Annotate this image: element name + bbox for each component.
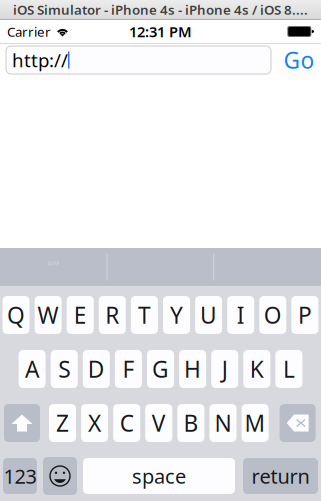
button[interactable]: F — [115, 350, 142, 388]
staticText: B — [183, 408, 198, 438]
button[interactable]: 123 — [3, 458, 37, 494]
button[interactable]: Delete — [280, 404, 316, 442]
button[interactable]: Z — [49, 404, 76, 442]
button[interactable]: A — [19, 350, 46, 388]
staticText: iOS Simulator - iPhone 4s - iPhone 4s / … — [13, 1, 308, 18]
button[interactable]: Emoji keyboard — [43, 457, 77, 495]
button[interactable]: X — [81, 404, 108, 442]
button[interactable]: B — [177, 404, 204, 442]
staticText: A — [25, 354, 39, 384]
staticText: V — [152, 408, 166, 438]
button[interactable]: O — [259, 296, 286, 334]
staticText: return — [251, 463, 309, 489]
staticText: X — [88, 408, 101, 438]
staticText: Z — [56, 408, 69, 438]
button[interactable]: T — [131, 296, 158, 334]
button[interactable]: K — [243, 350, 270, 388]
staticText: P — [298, 300, 312, 330]
staticText: O — [264, 300, 282, 330]
button[interactable]: M — [242, 404, 269, 442]
button[interactable]: L — [275, 350, 302, 388]
staticText: S — [58, 354, 70, 384]
staticText: Y — [170, 300, 183, 330]
staticText: 123 — [3, 463, 36, 489]
button[interactable]: V — [145, 404, 172, 442]
button[interactable]: H — [179, 350, 206, 388]
button[interactable]: I — [227, 296, 254, 334]
button[interactable]: Q — [2, 296, 29, 334]
staticText: Go — [283, 45, 314, 75]
staticText: U — [200, 300, 217, 330]
button[interactable]: G — [147, 350, 174, 388]
button[interactable]: Y — [163, 296, 190, 334]
button[interactable]: Go — [279, 46, 319, 74]
staticText: H — [184, 354, 201, 384]
button[interactable]: D — [83, 350, 110, 388]
staticText: K — [250, 354, 264, 384]
button[interactable]: U — [195, 296, 222, 334]
staticText: http:// — [12, 48, 68, 72]
staticText: M — [245, 408, 266, 438]
button[interactable]: W — [35, 296, 62, 334]
button[interactable]: S — [51, 350, 78, 388]
staticText: J — [222, 354, 228, 384]
staticText: T — [138, 300, 151, 330]
staticText: N — [214, 408, 231, 438]
button[interactable]: P — [291, 296, 318, 334]
staticText: “” — [47, 256, 59, 278]
staticText: G — [152, 354, 169, 384]
button[interactable]: E — [67, 296, 94, 334]
button[interactable]: Shift — [4, 404, 40, 442]
button[interactable]: return — [243, 458, 318, 494]
staticText: R — [105, 300, 119, 330]
staticText: Q — [7, 300, 25, 330]
staticText: 12:31 PM — [129, 22, 192, 41]
button[interactable]: J — [211, 350, 238, 388]
button[interactable]: C — [113, 404, 140, 442]
staticText: space — [132, 463, 186, 489]
staticText: I — [237, 300, 245, 330]
staticText: E — [74, 300, 87, 330]
staticText: C — [120, 408, 134, 438]
staticText: F — [122, 354, 134, 384]
staticText: W — [38, 300, 59, 330]
button[interactable]: R — [99, 296, 126, 334]
button[interactable]: space — [83, 458, 235, 494]
staticText: D — [88, 354, 105, 384]
button[interactable]: N — [209, 404, 236, 442]
staticText: L — [283, 354, 295, 384]
staticText: Carrier — [7, 23, 51, 40]
